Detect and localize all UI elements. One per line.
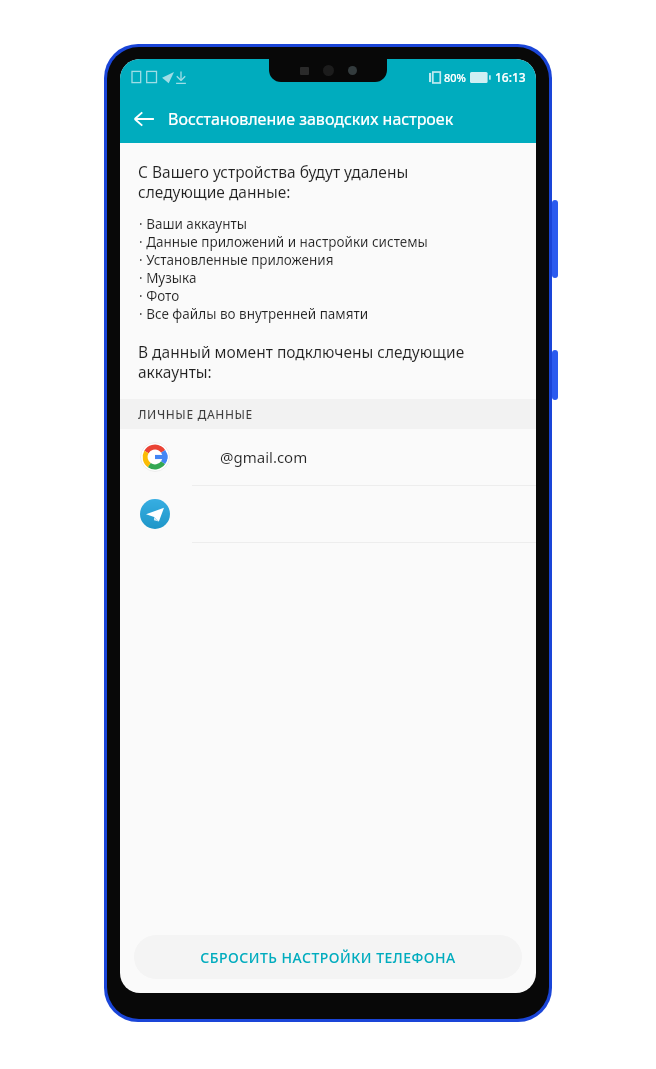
staticText: С Вашего устройства будут удалены следую… bbox=[138, 161, 409, 203]
staticText: Восстановление заводских настроек bbox=[168, 108, 454, 130]
button[interactable]: @gmail.com bbox=[120, 429, 536, 485]
staticText: 80% bbox=[444, 70, 466, 85]
staticText: В данный момент подключены следующие акк… bbox=[138, 341, 465, 383]
staticText: ЛИЧНЫЕ ДАННЫЕ bbox=[138, 406, 253, 422]
staticText: @gmail.com bbox=[220, 447, 308, 467]
staticText: · Все файлы во внутренней памяти bbox=[139, 305, 369, 323]
staticText: · Фото bbox=[139, 287, 180, 305]
staticText: · Установленные приложения bbox=[139, 251, 334, 269]
staticText: · Ваши аккаунты bbox=[139, 215, 247, 233]
staticText: СБРОСИТЬ НАСТРОЙКИ ТЕЛЕФОНА bbox=[200, 948, 456, 967]
button[interactable] bbox=[120, 486, 536, 542]
staticText: · Данные приложений и настройки системы bbox=[139, 233, 428, 251]
staticText: 16:13 bbox=[495, 69, 526, 85]
button[interactable]: Back bbox=[120, 95, 168, 143]
staticText: · Музыка bbox=[139, 269, 197, 287]
button[interactable]: СБРОСИТЬ НАСТРОЙКИ ТЕЛЕФОНА bbox=[134, 935, 522, 979]
